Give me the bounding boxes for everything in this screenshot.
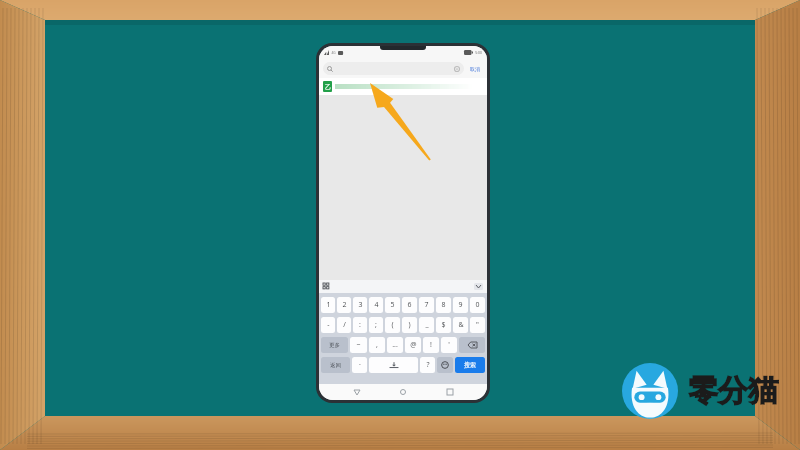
button[interactable]: ;	[369, 317, 383, 333]
staticText: 5	[390, 300, 395, 310]
staticText: 零分猫	[688, 372, 778, 410]
button[interactable]: 0	[470, 297, 485, 313]
staticText: 取消	[470, 66, 480, 72]
button[interactable]: 乙	[319, 78, 487, 95]
staticText: (	[391, 320, 394, 330]
staticText: -	[327, 320, 330, 330]
button[interactable]: $	[436, 317, 451, 333]
button[interactable]: Backspace	[459, 337, 485, 353]
staticText: 乙	[325, 83, 331, 91]
button[interactable]: !	[423, 337, 439, 353]
button[interactable]: 2	[337, 297, 351, 313]
staticText: /	[343, 320, 346, 330]
staticText: 5:00	[475, 50, 482, 55]
staticText: 返回	[330, 362, 341, 369]
button[interactable]: "	[470, 317, 485, 333]
staticText: 0	[475, 300, 480, 310]
button[interactable]: 9	[453, 297, 468, 313]
button[interactable]: ...	[387, 337, 403, 353]
button[interactable]: Keyboard tools	[323, 283, 330, 290]
staticText: ·	[359, 360, 361, 370]
staticText: "	[476, 320, 479, 330]
button[interactable]: 搜索	[455, 357, 485, 373]
button[interactable]: 返回	[321, 357, 350, 373]
button[interactable]: 取消	[467, 62, 483, 75]
staticText: ~	[356, 340, 361, 350]
button[interactable]: Hide keyboard	[474, 283, 483, 290]
staticText: _	[425, 320, 429, 330]
staticText: &	[458, 320, 464, 330]
staticText: 2	[342, 300, 347, 310]
staticText: @	[410, 340, 417, 350]
staticText: 4G	[331, 51, 336, 55]
staticText: 1	[326, 300, 331, 310]
button[interactable]: ·	[352, 357, 367, 373]
staticText: )	[408, 320, 411, 330]
staticText: 3	[358, 300, 363, 310]
button[interactable]: _	[419, 317, 434, 333]
button[interactable]: '	[441, 337, 457, 353]
staticText: :	[359, 320, 361, 330]
staticText: 7	[424, 300, 429, 310]
button[interactable]: 8	[436, 297, 451, 313]
button[interactable]: )	[402, 317, 417, 333]
staticText: ?	[426, 360, 430, 370]
button[interactable]: /	[337, 317, 351, 333]
button[interactable]: Emoji	[437, 357, 453, 373]
button[interactable]: 4	[369, 297, 383, 313]
staticText: 搜索	[464, 361, 476, 369]
button[interactable]: ,	[369, 337, 385, 353]
button[interactable]: @	[405, 337, 421, 353]
button[interactable]: &	[453, 317, 468, 333]
button[interactable]: Clear	[323, 62, 464, 75]
button[interactable]: ~	[350, 337, 367, 353]
button[interactable]: 更多	[321, 337, 348, 353]
button[interactable]: Recents	[441, 384, 459, 400]
button[interactable]: (	[385, 317, 400, 333]
staticText: ;	[375, 320, 377, 330]
button[interactable]: 6	[402, 297, 417, 313]
button[interactable]: 零分猫 logo	[622, 363, 778, 419]
button[interactable]: 1	[321, 297, 335, 313]
button[interactable]: :	[353, 317, 367, 333]
staticText: ...	[392, 340, 398, 350]
staticText: '	[448, 340, 450, 350]
staticText: $	[441, 320, 446, 330]
staticText: 更多	[329, 342, 340, 349]
staticText: 6	[407, 300, 412, 310]
button[interactable]: -	[321, 317, 335, 333]
button[interactable]: Clear	[454, 66, 460, 72]
button[interactable]: 3	[353, 297, 367, 313]
button[interactable]: Home	[394, 384, 412, 400]
button[interactable]: 5	[385, 297, 400, 313]
staticText: 8	[441, 300, 446, 310]
button[interactable]: ?	[420, 357, 435, 373]
staticText: !	[430, 340, 432, 350]
staticText: 9	[458, 300, 463, 310]
staticText: ,	[376, 340, 378, 350]
staticText: 4	[374, 300, 379, 310]
button[interactable]: 7	[419, 297, 434, 313]
button[interactable]: Back	[348, 384, 366, 400]
button[interactable]: Space	[369, 357, 418, 373]
